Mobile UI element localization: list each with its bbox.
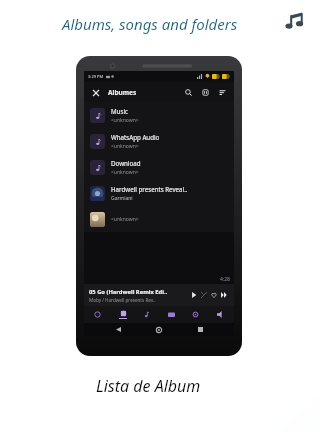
button[interactable]: <unknown>	[84, 206, 234, 232]
staticText: 3:29 PM	[88, 74, 104, 79]
button[interactable]: Sort	[216, 86, 229, 99]
staticText: <unknown>	[111, 143, 139, 150]
button[interactable]: Albums	[112, 306, 133, 323]
button[interactable]: Close	[89, 86, 102, 99]
staticText: <unknown>	[111, 117, 139, 124]
button[interactable]: 05 Go (Hardwell Remix Edi..	[84, 284, 234, 306]
staticText: Albumes	[108, 88, 137, 97]
button[interactable]: Recents	[193, 323, 207, 336]
staticText: WhatsApp Audio	[111, 133, 160, 141]
staticText: <unknown>	[111, 216, 139, 223]
button[interactable]: Songs	[136, 306, 157, 323]
button[interactable]: Shuffle	[199, 290, 209, 300]
button[interactable]: Play	[189, 290, 199, 300]
button[interactable]: Equalizer	[199, 86, 212, 99]
staticText: 4:28	[220, 276, 230, 283]
staticText: Albums, songs and folders	[62, 14, 238, 34]
staticText: 05 Go (Hardwell Remix Edi..	[89, 288, 168, 296]
staticText: Moby / Hardwell presents Rev..	[89, 297, 156, 303]
button[interactable]: Volume	[210, 306, 231, 323]
staticText: Download	[111, 159, 141, 167]
staticText: <unknown>	[111, 169, 139, 176]
button[interactable]: Search	[182, 86, 195, 99]
button[interactable]: Music	[84, 102, 234, 128]
button[interactable]: Hardwell presents Reveal..	[84, 180, 234, 206]
button[interactable]: Home	[152, 323, 166, 336]
button[interactable]: Back	[111, 323, 125, 336]
button[interactable]: Download	[84, 154, 234, 180]
staticText: Lista de Album	[96, 375, 201, 397]
button[interactable]: Settings	[185, 306, 206, 323]
button[interactable]: Now playing	[87, 306, 108, 323]
button[interactable]: Folders	[161, 306, 182, 323]
staticText: Hardwell presents Reveal..	[111, 185, 188, 193]
button[interactable]: Next	[219, 290, 229, 300]
button[interactable]: WhatsApp Audio	[84, 128, 234, 154]
staticText: Music	[111, 107, 128, 115]
staticText: Garmiani	[111, 195, 133, 202]
button[interactable]: Favorite	[209, 290, 219, 300]
